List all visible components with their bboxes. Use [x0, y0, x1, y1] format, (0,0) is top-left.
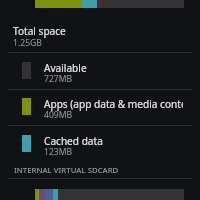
- staticText: Available: [44, 61, 183, 75]
- staticText: Apps (app data & media content): [44, 97, 183, 111]
- staticText: 123MB: [44, 146, 73, 158]
- staticText: 409MB: [44, 109, 73, 121]
- button[interactable]: Total space: [0, 13, 200, 52]
- staticText: 1.25GB: [13, 37, 42, 49]
- button[interactable]: Cached data: [0, 126, 200, 162]
- staticText: INTERNAL VIRTUAL SDCARD: [14, 165, 119, 176]
- staticText: Total space: [13, 24, 66, 38]
- button[interactable]: Available: [0, 53, 200, 89]
- staticText: Cached data: [44, 134, 183, 148]
- staticText: 727MB: [44, 73, 73, 85]
- button[interactable]: Apps (app data & media content): [0, 89, 200, 125]
